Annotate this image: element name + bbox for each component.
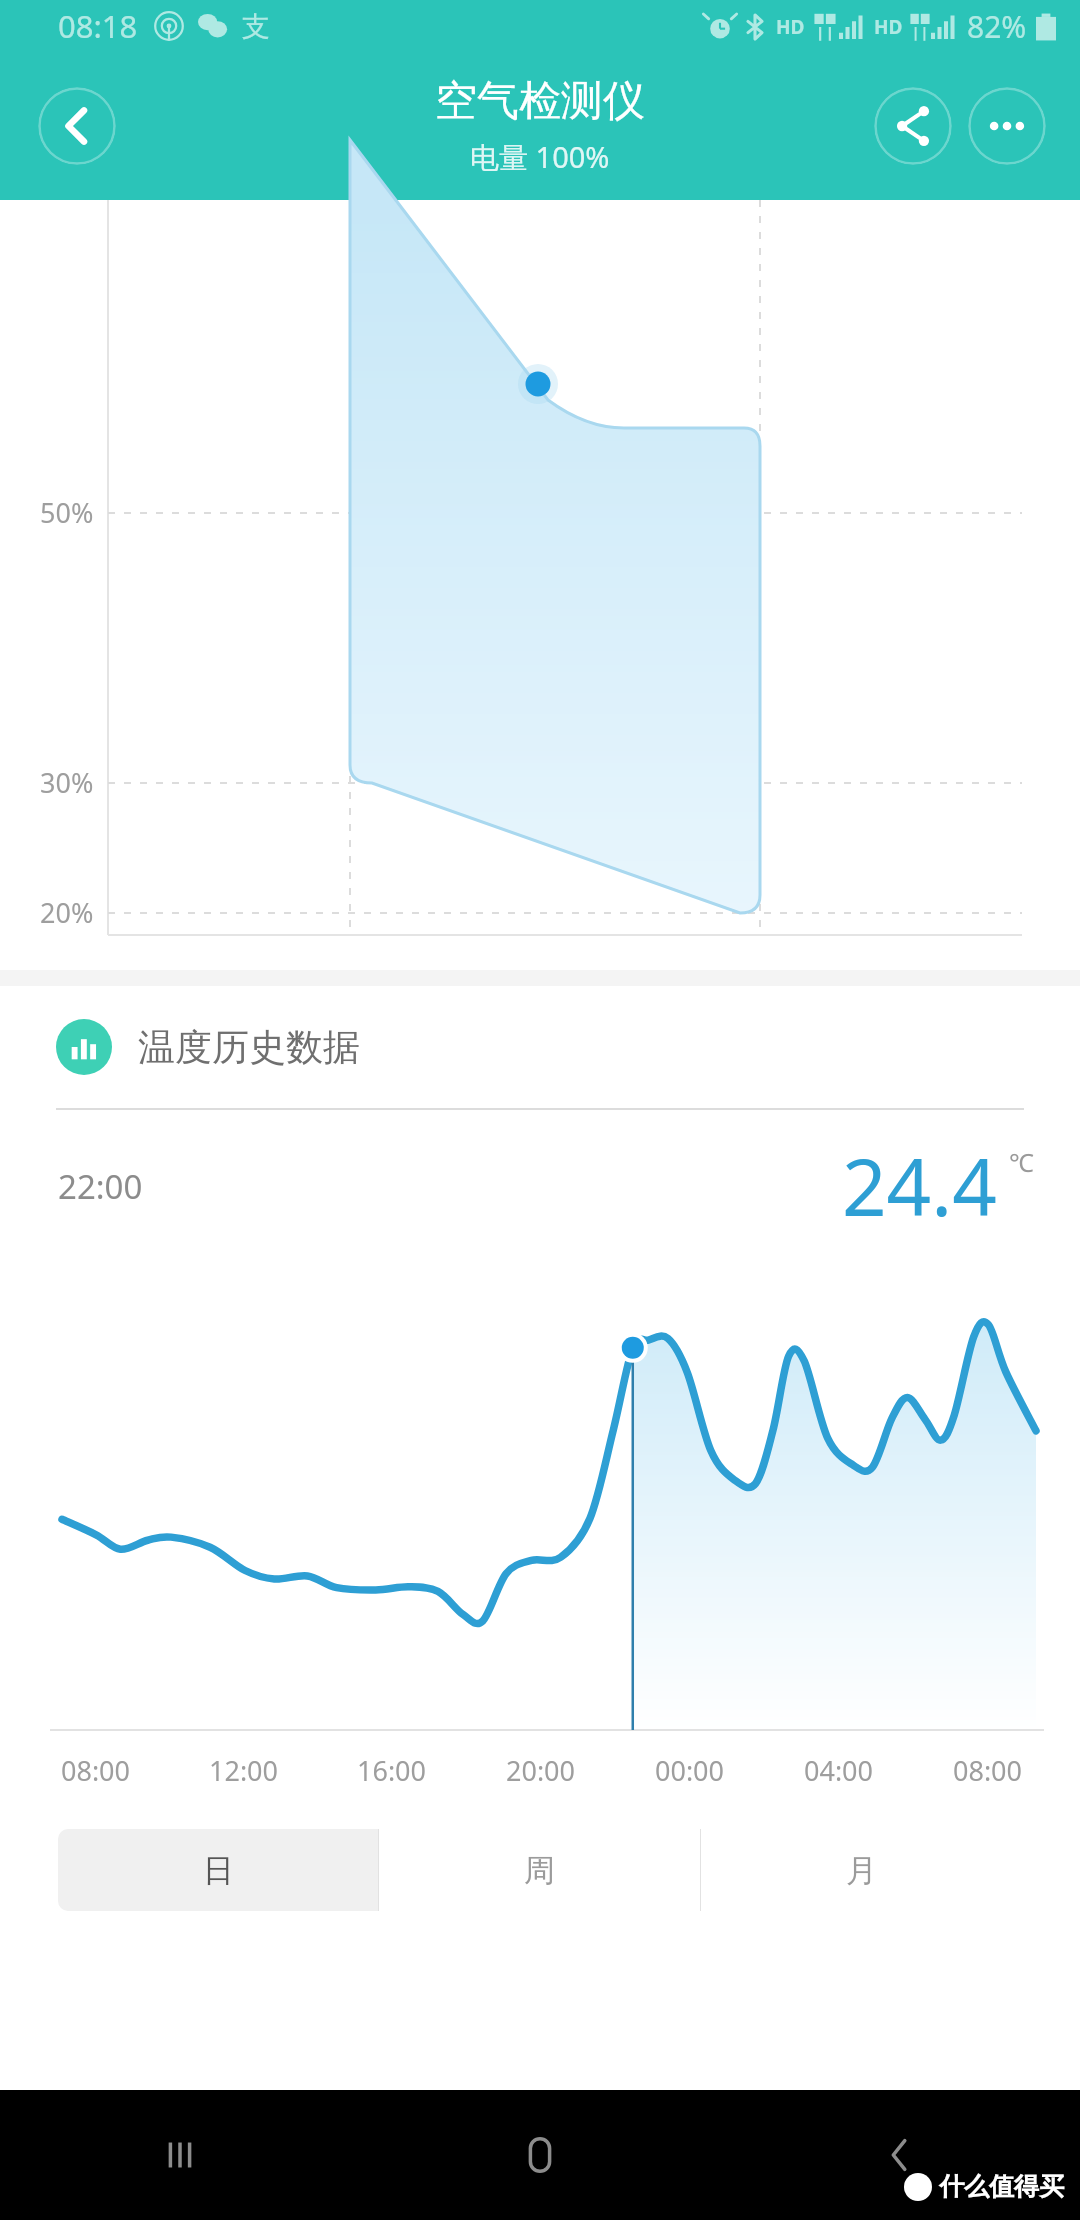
- staticText: 12:00: [209, 1752, 279, 1789]
- staticText: 50%: [40, 494, 94, 531]
- button[interactable]: 周: [379, 1829, 700, 1911]
- button[interactable]: Back: [720, 2090, 1080, 2220]
- staticText: 22:00: [58, 1164, 143, 1209]
- button[interactable]: More options: [968, 87, 1046, 165]
- button[interactable]: Home: [360, 2090, 720, 2220]
- staticText: HD: [776, 14, 805, 40]
- staticText: 20%: [40, 894, 94, 931]
- staticText: 08:00: [953, 1752, 1023, 1789]
- staticText: 空气检测仪: [435, 75, 645, 128]
- staticText: 周: [524, 1851, 555, 1890]
- staticText: 什么值得买: [939, 2171, 1064, 2202]
- staticText: ℃: [1009, 1145, 1034, 1179]
- button[interactable]: Recent apps: [0, 2090, 360, 2220]
- button[interactable]: Back: [38, 87, 116, 165]
- button[interactable]: Share: [874, 87, 952, 165]
- staticText: 日: [203, 1851, 234, 1890]
- staticText: 30%: [40, 764, 94, 801]
- staticText: 支: [242, 9, 270, 44]
- staticText: 04:00: [804, 1752, 874, 1789]
- staticText: HD: [874, 14, 903, 40]
- button[interactable]: 温度历史数据: [0, 986, 1080, 1108]
- staticText: 08:18: [58, 5, 138, 47]
- staticText: 月: [846, 1851, 877, 1890]
- staticText: 电量 100%: [470, 137, 610, 177]
- button[interactable]: 日: [58, 1829, 378, 1911]
- staticText: 温度历史数据: [138, 1024, 360, 1071]
- staticText: 00:00: [655, 1752, 725, 1789]
- staticText: 26.5℃: [708, 1084, 789, 1121]
- staticText: 24.4: [842, 1133, 997, 1239]
- staticText: 20:00: [506, 1752, 576, 1789]
- button[interactable]: 月: [701, 1829, 1022, 1911]
- staticText: 16:00: [357, 1752, 427, 1789]
- staticText: 08:00: [61, 1752, 131, 1789]
- staticText: 20℃: [298, 1084, 356, 1121]
- staticText: 82%: [967, 6, 1027, 47]
